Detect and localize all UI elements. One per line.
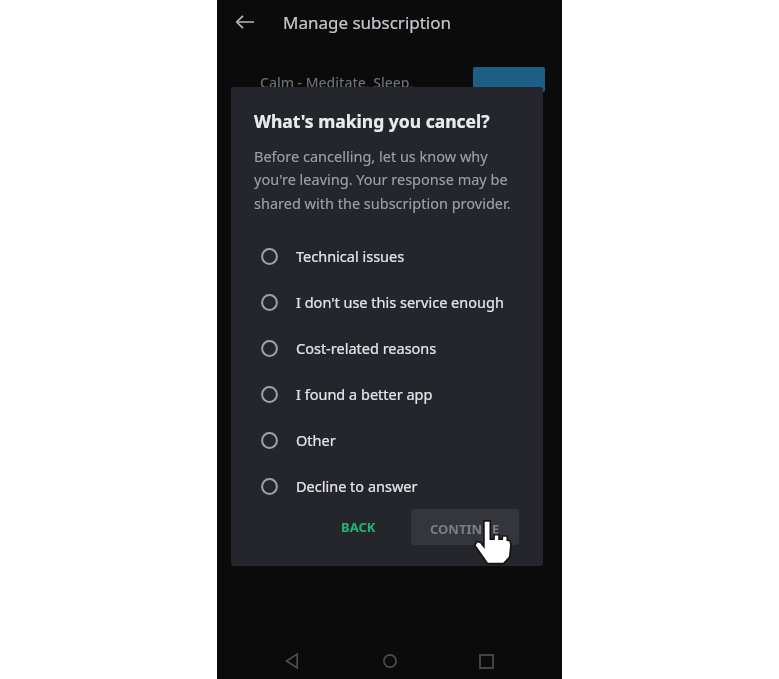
button[interactable]: Home <box>370 643 410 679</box>
button[interactable]: Cost-related reasons <box>231 325 543 371</box>
staticText: Decline to answer <box>296 476 418 496</box>
button[interactable]: Recents <box>466 643 506 679</box>
staticText: What's making you cancel? <box>254 109 490 133</box>
staticText: I found a better app <box>296 384 433 404</box>
button[interactable]: Back <box>273 643 313 679</box>
button[interactable]: Technical issues <box>231 233 543 279</box>
staticText: Other <box>296 430 336 450</box>
staticText: Technical issues <box>296 246 405 266</box>
button[interactable]: Back <box>227 4 263 40</box>
staticText: Calm - Meditate, Sleep, <box>260 73 414 92</box>
button[interactable]: CONTINUE <box>411 509 519 545</box>
button[interactable]: Resume subscription <box>473 67 545 92</box>
staticText: CONTINUE <box>430 520 500 534</box>
button[interactable]: I found a better app <box>231 371 543 417</box>
staticText: Before cancelling, let us know why you'r… <box>254 146 523 214</box>
staticText: I don't use this service enough <box>296 292 504 312</box>
button[interactable]: Other <box>231 417 543 463</box>
button[interactable]: Decline to answer <box>231 463 543 509</box>
staticText: Cost-related reasons <box>296 338 437 358</box>
button[interactable]: BACK <box>327 509 390 545</box>
staticText: BACK <box>341 518 376 536</box>
button[interactable]: I don't use this service enough <box>231 279 543 325</box>
staticText: Manage subscription <box>283 11 452 34</box>
